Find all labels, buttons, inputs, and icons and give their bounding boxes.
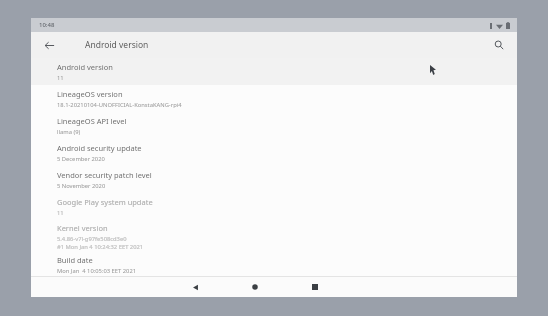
staticText: 11 bbox=[57, 74, 64, 82]
staticText: Android version bbox=[85, 39, 149, 51]
staticText: 5 November 2020 bbox=[57, 182, 106, 190]
staticText: Kernel version bbox=[57, 223, 108, 233]
button[interactable]: Kernel version bbox=[31, 220, 517, 254]
staticText: 18.1-20210104-UNOFFICIAL-KonstaKANG-rpi4 bbox=[57, 101, 182, 109]
button[interactable]: Recents bbox=[301, 277, 329, 297]
staticText: 5 December 2020 bbox=[57, 155, 105, 163]
button[interactable]: Search bbox=[489, 35, 509, 55]
button[interactable]: Back bbox=[181, 277, 209, 297]
staticText: Vendor security patch level bbox=[57, 170, 152, 180]
button[interactable]: Build date bbox=[31, 254, 517, 276]
button[interactable]: Android security update bbox=[31, 139, 517, 166]
staticText: LineageOS API level bbox=[57, 116, 127, 126]
staticText: Google Play system update bbox=[57, 197, 153, 207]
staticText: LineageOS version bbox=[57, 89, 123, 99]
button[interactable]: Google Play system update bbox=[31, 193, 517, 220]
staticText: 11 bbox=[57, 209, 64, 217]
staticText: llama (9) bbox=[57, 128, 81, 136]
button[interactable]: Back bbox=[39, 35, 59, 55]
button[interactable]: Vendor security patch level bbox=[31, 166, 517, 193]
staticText: Android version bbox=[57, 62, 113, 72]
staticText: Build date bbox=[57, 255, 93, 265]
staticText: 10:48 bbox=[39, 21, 55, 29]
staticText: 5.4.86-v7l-g97fe508cd3e0 bbox=[57, 235, 127, 243]
staticText: Android security update bbox=[57, 143, 142, 153]
button[interactable]: Android version bbox=[31, 58, 517, 85]
button[interactable]: LineageOS version bbox=[31, 85, 517, 112]
button[interactable]: LineageOS API level bbox=[31, 112, 517, 139]
staticText: Mon Jan 4 10:05:03 EET 2021 bbox=[57, 267, 137, 275]
button[interactable]: Home bbox=[241, 277, 269, 297]
staticText: #1 Mon Jan 4 10:24:32 EET 2021 bbox=[57, 243, 144, 251]
